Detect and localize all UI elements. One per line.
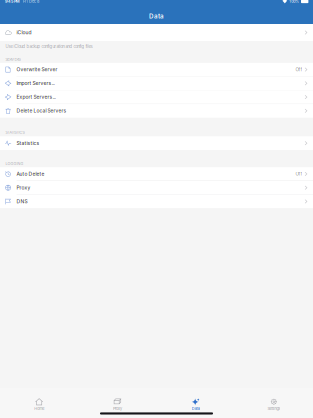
staticText: Off [295,67,302,72]
staticText: DNS [17,198,28,204]
staticText: Home [34,406,44,411]
button[interactable]: Statistics [0,136,313,150]
staticText: Data [149,12,164,20]
staticText: iCloud [17,29,32,35]
staticText: Proxy [17,185,31,191]
button[interactable]: Proxy [0,181,313,194]
staticText: Settings [267,406,280,411]
button[interactable]: Import Servers... [0,77,313,90]
staticText: 100% [289,0,299,4]
staticText: Proxy [113,406,122,411]
staticText: Off [295,171,302,177]
button[interactable]: Home [0,397,78,411]
staticText: Use iCloud backup configuration and conf… [5,44,93,49]
staticText: STATISTICS [5,130,24,135]
staticText: Import Servers... [17,80,55,86]
button[interactable]: Overwrite Server [0,63,313,76]
staticText: Statistics [17,140,40,146]
button[interactable]: Export Servers... [0,90,313,104]
button[interactable]: iCloud [0,26,313,39]
staticText: Fri Dec 8 [23,0,39,4]
button[interactable]: Auto Delete [0,167,313,181]
staticText: LOGGING [5,161,23,166]
staticText: Overwrite Server [17,67,58,73]
button[interactable]: Data [156,397,235,411]
staticText: Delete Local Servers [17,108,67,114]
staticText: Auto Delete [17,171,45,177]
staticText: SERVERS [5,57,20,62]
button[interactable]: Settings [235,397,313,411]
button[interactable]: Delete Local Servers [0,104,313,117]
button[interactable]: Proxy [78,397,156,411]
staticText: Export Servers... [17,94,56,100]
staticText: Data [192,406,200,411]
staticText: 9:45 PM [5,0,20,4]
button[interactable]: DNS [0,195,313,208]
